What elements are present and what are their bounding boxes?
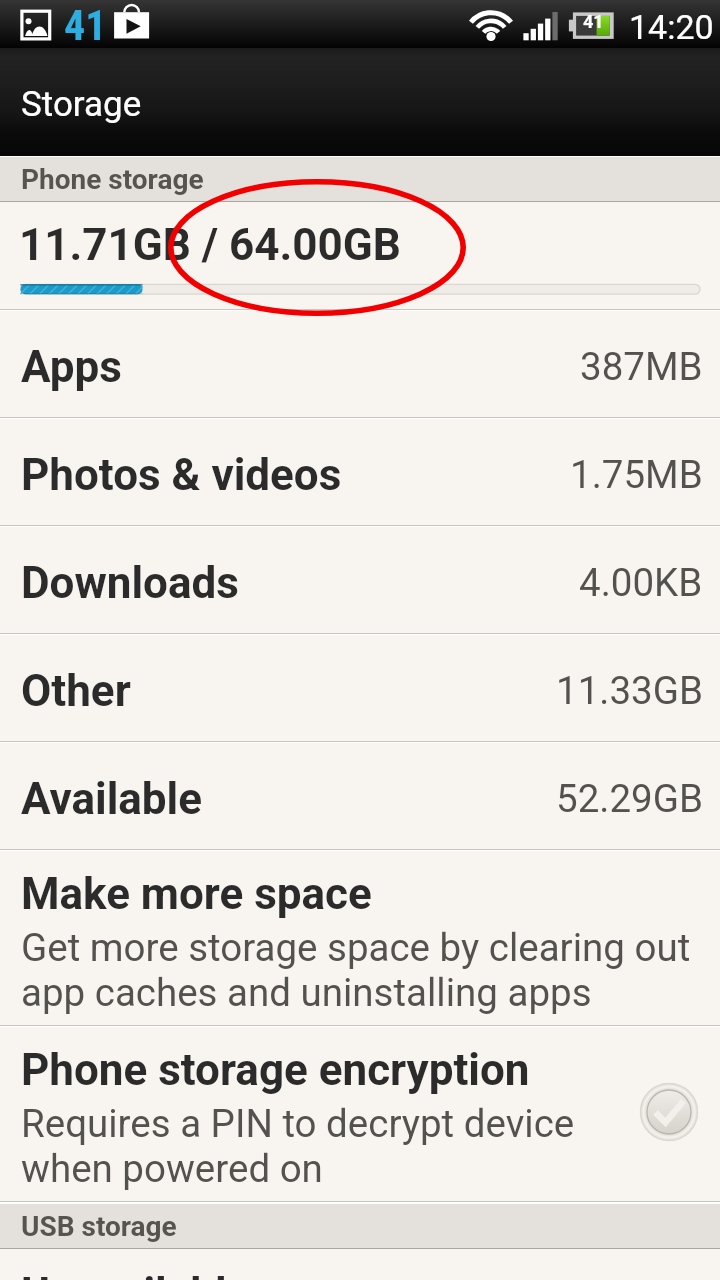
staticText: Get more storage space by clearing out: [21, 925, 691, 970]
staticText: Available: [21, 773, 202, 825]
staticText: USB storage: [21, 1210, 177, 1243]
staticText: Other: [21, 665, 131, 717]
staticText: Photos & videos: [21, 449, 342, 501]
staticText: 387MB: [580, 344, 703, 389]
button[interactable]: Other: [0, 635, 720, 741]
button[interactable]: Photos & videos: [0, 419, 720, 525]
staticText: Phone storage encryption: [21, 1044, 530, 1096]
staticText: Unavailable: [21, 1268, 251, 1280]
staticText: Phone storage: [21, 163, 204, 196]
staticText: 41: [64, 1, 107, 49]
staticText: 14:20: [629, 7, 714, 47]
staticText: Apps: [21, 341, 122, 393]
staticText: 11.33GB: [556, 668, 703, 713]
staticText: 4.00KB: [579, 560, 703, 605]
staticText: 1.75MB: [570, 452, 703, 497]
staticText: 41: [583, 11, 604, 32]
staticText: 11.71GB / 64.00GB: [19, 219, 401, 271]
button[interactable]: Make more space: [0, 851, 720, 1025]
button[interactable]: Unavailable: [0, 1249, 720, 1280]
button[interactable]: Apps: [0, 311, 720, 417]
button[interactable]: Available: [0, 743, 720, 849]
staticText: Storage: [21, 84, 142, 125]
staticText: app caches and uninstalling apps: [21, 970, 592, 1015]
button[interactable]: Phone storage encryption: [0, 1027, 720, 1201]
staticText: 52.29GB: [556, 776, 703, 821]
button[interactable]: Downloads: [0, 527, 720, 633]
staticText: Downloads: [21, 557, 239, 609]
button[interactable]: Phone storage encryption checkbox: [639, 1082, 699, 1142]
staticText: Requires a PIN to decrypt device: [21, 1101, 575, 1146]
staticText: when powered on: [21, 1146, 323, 1191]
staticText: Make more space: [21, 868, 372, 920]
